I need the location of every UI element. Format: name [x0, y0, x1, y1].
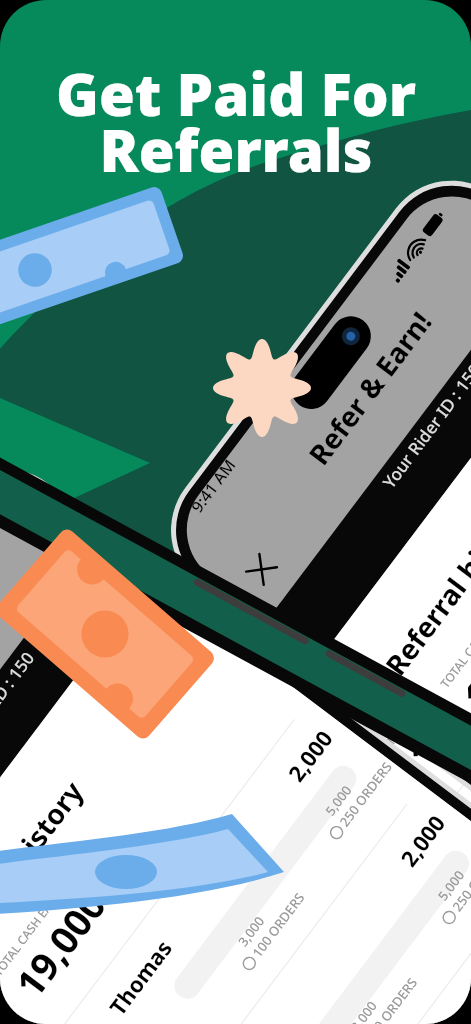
staticText: Get Paid For Referrals: [56, 54, 416, 189]
button[interactable]: Get Paid For Referrals: [0, 0, 471, 1024]
